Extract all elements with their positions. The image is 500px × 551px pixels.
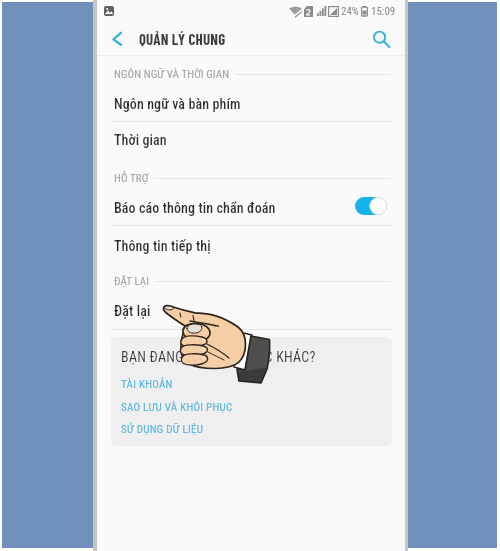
button[interactable]: Đặt lại	[97, 294, 405, 328]
button[interactable]: Ngôn ngữ và bàn phím	[97, 87, 405, 121]
staticText: Thời gian	[114, 132, 167, 148]
staticText: BẠN ĐANG TÌM KIẾM MỤC KHÁC?	[121, 349, 316, 365]
staticText: HỖ TRỢ	[114, 172, 149, 185]
staticText: NGÔN NGỮ VÀ THỜI GIAN	[114, 68, 230, 81]
button[interactable]: SỬ DỤNG DỮ LIỆU	[121, 422, 204, 437]
button[interactable]: Thông tin tiếp thị	[97, 229, 405, 263]
staticText: TÀI KHOẢN	[121, 378, 173, 391]
staticText: 15:09	[371, 5, 396, 18]
staticText: 24%	[341, 5, 359, 18]
staticText: ĐẶT LẠI	[114, 275, 150, 288]
staticText: SAO LƯU VÀ KHÔI PHỤC	[121, 401, 233, 414]
button[interactable]: TÀI KHOẢN	[121, 377, 173, 392]
staticText: Ngôn ngữ và bàn phím	[114, 96, 241, 112]
staticText: Đặt lại	[114, 303, 151, 319]
button[interactable]: Báo cáo thông tin chẩn đoán	[355, 197, 391, 215]
button[interactable]: Back	[105, 22, 133, 56]
staticText: Báo cáo thông tin chẩn đoán	[114, 200, 276, 216]
button[interactable]: Báo cáo thông tin chẩn đoán	[97, 191, 405, 225]
staticText: QUẢN LÝ CHUNG	[139, 30, 226, 48]
button[interactable]: SAO LƯU VÀ KHÔI PHỤC	[121, 400, 233, 415]
button[interactable]: Search	[366, 24, 396, 54]
staticText: Thông tin tiếp thị	[114, 238, 211, 254]
button[interactable]: Thời gian	[97, 123, 405, 157]
staticText: SỬ DỤNG DỮ LIỆU	[121, 423, 204, 436]
